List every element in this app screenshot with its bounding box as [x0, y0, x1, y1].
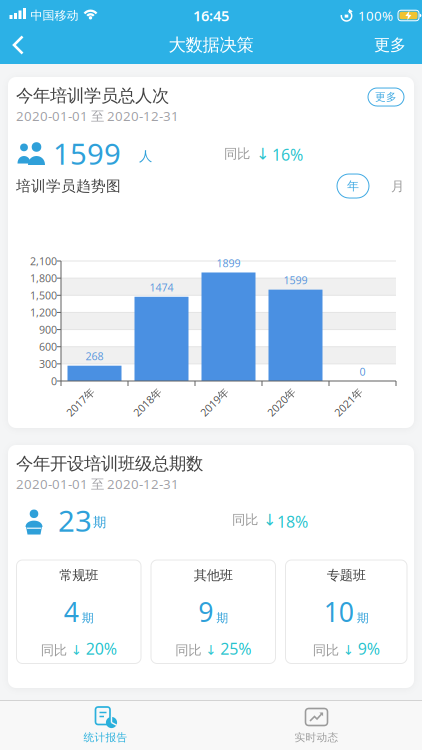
staticText: 16:45 [193, 6, 229, 25]
staticText: 20% [86, 638, 117, 659]
staticText: 1599 [53, 134, 121, 173]
staticText: 4 [64, 594, 79, 629]
staticText: 2017年 [63, 395, 98, 409]
staticText: 2018年 [130, 395, 165, 409]
staticText: 期 [216, 611, 228, 625]
staticText: ↓ [343, 643, 354, 658]
staticText: 统计报告 [83, 731, 127, 744]
button[interactable]: 更多 [374, 35, 406, 55]
staticText: 中国移动 [30, 8, 78, 23]
staticText: ↓ [205, 643, 216, 658]
staticText: 人 [139, 148, 152, 164]
staticText: ↓ [263, 511, 276, 529]
staticText: 同比 [224, 145, 250, 162]
button[interactable]: 更多 [368, 88, 404, 106]
staticText: 268 [85, 349, 103, 363]
button[interactable]: 实时动态 [211, 700, 422, 750]
staticText: 2020-01-01 至 2020-12-31 [16, 107, 179, 125]
staticText: 专题班 [327, 567, 366, 583]
staticText: 25% [220, 638, 251, 659]
staticText: 今年培训学员总人次 [16, 85, 169, 106]
staticText: 其他班 [194, 567, 233, 583]
staticText: 实时动态 [294, 731, 338, 744]
staticText: 期 [82, 611, 94, 625]
staticText: ↓ [256, 145, 269, 163]
staticText: 同比 [232, 511, 258, 528]
staticText: 培训学员趋势图 [16, 177, 121, 195]
staticText: 1899 [216, 256, 240, 270]
staticText: 今年开设培训班级总期数 [16, 453, 203, 474]
staticText: 900 [39, 322, 57, 337]
staticText: 600 [39, 340, 57, 354]
staticText: 9% [358, 638, 380, 659]
staticText: 更多 [375, 90, 397, 103]
button[interactable]: 月 [391, 178, 404, 194]
button[interactable]: Back [7, 33, 31, 57]
staticText: 大数据决策 [168, 34, 253, 56]
staticText: 23 [58, 501, 92, 540]
staticText: 同比 [175, 642, 201, 659]
staticText: 10 [324, 594, 354, 629]
staticText: 月 [391, 178, 404, 194]
staticText: 300 [39, 357, 57, 371]
staticText: 100% [358, 7, 393, 24]
staticText: 期 [93, 514, 106, 530]
button[interactable]: 年 [337, 174, 369, 198]
staticText: 1,200 [30, 305, 57, 319]
staticText: 同比 [313, 642, 339, 659]
staticText: 同比 [41, 642, 67, 659]
staticText: 0 [51, 374, 57, 388]
staticText: 常规班 [59, 567, 98, 583]
staticText: 期 [357, 611, 369, 625]
staticText: 1,500 [30, 288, 57, 302]
staticText: 18% [277, 511, 308, 532]
staticText: ↓ [71, 643, 82, 658]
staticText: 16% [272, 144, 303, 165]
staticText: 1474 [149, 280, 173, 294]
staticText: 0 [359, 364, 365, 379]
staticText: 1,800 [30, 271, 57, 285]
staticText: 2020年 [264, 395, 299, 409]
staticText: 更多 [374, 35, 406, 55]
staticText: 1599 [283, 273, 307, 287]
staticText: 2020-01-01 至 2020-12-31 [16, 475, 179, 493]
staticText: 9 [198, 594, 213, 629]
staticText: 2021年 [331, 395, 366, 409]
staticText: 2,100 [30, 254, 57, 268]
staticText: 年 [347, 179, 359, 193]
button[interactable]: 统计报告 [0, 700, 211, 750]
staticText: 2019年 [197, 395, 232, 409]
